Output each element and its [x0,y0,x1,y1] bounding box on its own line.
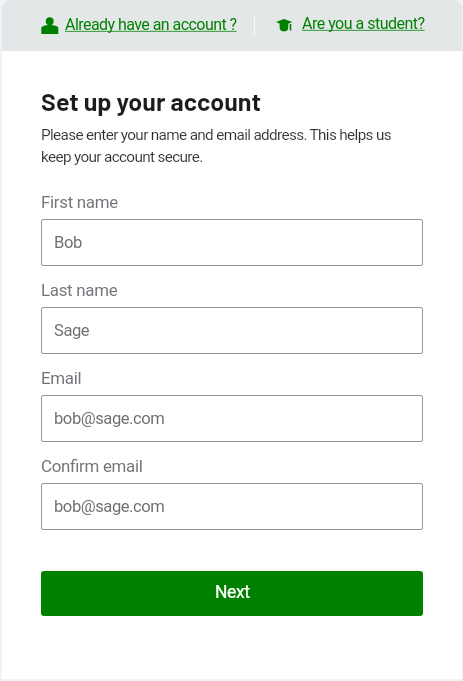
button[interactable]: Next [41,571,423,616]
staticText: Email [41,368,82,388]
button[interactable]: Are you a student [276,8,425,43]
button[interactable]: bob@sage.com [41,483,423,530]
staticText: bob@sage.com [54,497,165,516]
button[interactable]: Already have an account [41,8,237,44]
other: Are you a student [276,19,294,33]
button[interactable]: Sage [41,307,423,354]
button[interactable]: bob@sage.com [41,395,423,442]
staticText: Next [215,582,250,603]
button[interactable]: Bob [41,219,423,266]
staticText: Last name [41,280,118,300]
staticText: Are you a student? [302,14,425,33]
staticText: Already have an account ? [65,15,237,34]
other: Already have an account [41,16,59,36]
staticText: Please enter your name and email address… [41,126,391,165]
staticText: First name [41,192,118,212]
staticText: bob@sage.com [54,409,165,428]
staticText: Set up your account [41,86,261,116]
staticText: Sage [54,321,90,340]
staticText: Bob [54,233,82,252]
staticText: Confirm email [41,456,143,476]
